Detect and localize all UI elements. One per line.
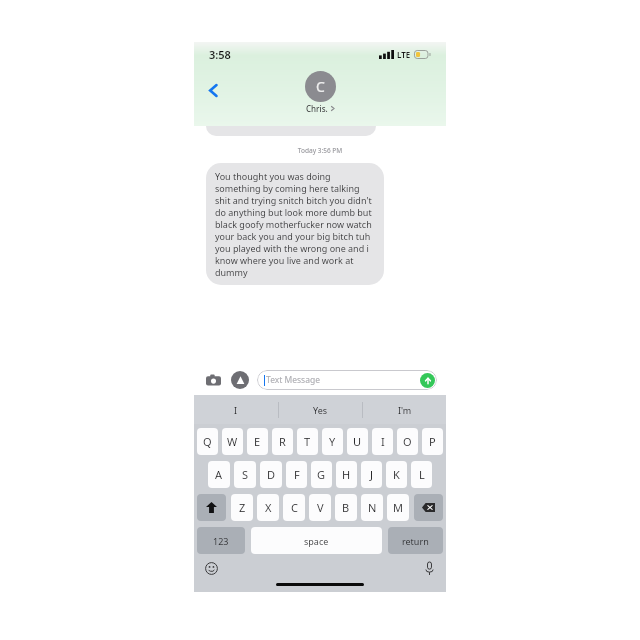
- staticText: E: [254, 434, 261, 449]
- staticText: Today 3:56 PM: [194, 146, 446, 155]
- button[interactable]: C: [305, 71, 336, 102]
- staticText: I: [234, 404, 238, 416]
- button[interactable]: I: [194, 395, 278, 424]
- button[interactable]: Delete: [414, 494, 443, 521]
- button[interactable]: Chris.: [306, 103, 335, 114]
- staticText: F: [294, 467, 300, 482]
- staticText: C: [291, 500, 298, 515]
- button[interactable]: S: [234, 461, 256, 488]
- button[interactable]: D: [260, 461, 282, 488]
- button[interactable]: X: [257, 494, 279, 521]
- button[interactable]: Send: [420, 373, 435, 388]
- staticText: W: [227, 434, 238, 449]
- button[interactable]: J: [361, 461, 382, 488]
- staticText: space: [304, 535, 329, 547]
- button[interactable]: Dictation: [420, 559, 438, 577]
- button[interactable]: Yes: [279, 395, 362, 424]
- button[interactable]: I'm: [363, 395, 446, 424]
- button[interactable]: C: [283, 494, 305, 521]
- button[interactable]: O: [397, 428, 418, 455]
- staticText: Chris.: [306, 103, 328, 114]
- staticText: N: [368, 500, 377, 515]
- staticText: Text Message: [266, 374, 320, 386]
- staticText: Yes: [313, 404, 328, 416]
- staticText: I'm: [398, 404, 412, 416]
- staticText: S: [242, 467, 249, 482]
- staticText: J: [370, 467, 374, 482]
- button[interactable]: App Store: [231, 371, 249, 389]
- button[interactable]: F: [286, 461, 307, 488]
- staticText: H: [342, 467, 351, 482]
- staticText: P: [429, 434, 436, 449]
- button[interactable]: L: [411, 461, 432, 488]
- staticText: A: [215, 467, 223, 482]
- staticText: V: [317, 500, 324, 515]
- button[interactable]: Text Message: [257, 370, 437, 390]
- button[interactable]: W: [222, 428, 243, 455]
- staticText: Y: [329, 434, 336, 449]
- button[interactable]: R: [272, 428, 293, 455]
- staticText: O: [403, 434, 412, 449]
- staticText: B: [342, 500, 350, 515]
- staticText: return: [402, 535, 429, 547]
- button[interactable]: Shift: [197, 494, 226, 521]
- button[interactable]: N: [361, 494, 383, 521]
- button[interactable]: V: [309, 494, 331, 521]
- staticText: LTE: [397, 49, 411, 60]
- button[interactable]: M: [387, 494, 409, 521]
- staticText: X: [265, 500, 272, 515]
- staticText: D: [267, 467, 276, 482]
- staticText: L: [419, 467, 425, 482]
- button[interactable]: You thought you was doing something by c…: [206, 163, 384, 285]
- button[interactable]: U: [347, 428, 368, 455]
- button[interactable]: Emoji: [202, 559, 220, 577]
- button[interactable]: B: [335, 494, 357, 521]
- button[interactable]: A: [208, 461, 230, 488]
- staticText: M: [393, 500, 403, 515]
- staticText: I: [381, 434, 385, 449]
- staticText: C: [316, 77, 325, 96]
- button[interactable]: Camera: [203, 370, 223, 390]
- staticText: Z: [239, 500, 246, 515]
- button[interactable]: 123: [197, 527, 245, 554]
- staticText: T: [304, 434, 311, 449]
- button[interactable]: Back: [200, 77, 226, 103]
- staticText: K: [393, 467, 400, 482]
- button[interactable]: return: [388, 527, 443, 554]
- button[interactable]: space: [251, 527, 382, 554]
- button[interactable]: Y: [322, 428, 343, 455]
- staticText: Q: [203, 434, 212, 449]
- button[interactable]: [206, 126, 376, 136]
- button[interactable]: Q: [197, 428, 218, 455]
- staticText: You thought you was doing something by c…: [215, 170, 375, 278]
- button[interactable]: P: [422, 428, 443, 455]
- button[interactable]: Z: [231, 494, 253, 521]
- button[interactable]: H: [336, 461, 357, 488]
- button[interactable]: T: [297, 428, 318, 455]
- staticText: 3:58: [209, 47, 231, 62]
- button[interactable]: K: [386, 461, 407, 488]
- staticText: G: [317, 467, 326, 482]
- button[interactable]: E: [247, 428, 268, 455]
- staticText: R: [279, 434, 286, 449]
- staticText: U: [353, 434, 362, 449]
- button[interactable]: I: [372, 428, 393, 455]
- button[interactable]: G: [311, 461, 332, 488]
- staticText: 123: [213, 535, 229, 547]
